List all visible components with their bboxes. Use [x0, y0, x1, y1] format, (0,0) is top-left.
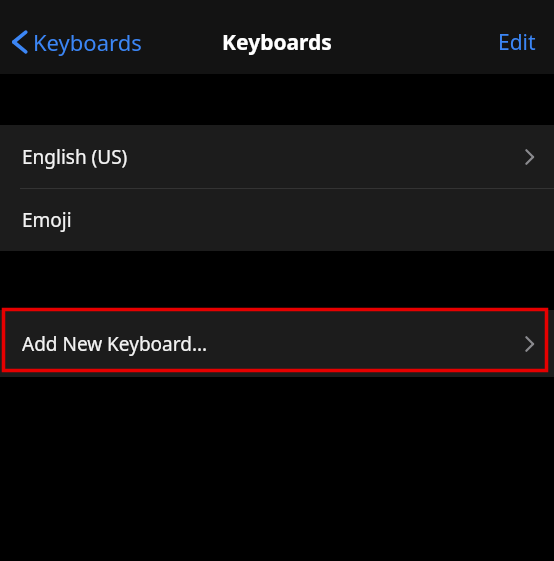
staticText: Keyboards: [222, 28, 332, 57]
staticText: Add New Keyboard...: [22, 331, 208, 357]
button[interactable]: Keyboards: [0, 23, 150, 61]
staticText: Edit: [498, 28, 536, 57]
staticText: English (US): [22, 144, 128, 170]
staticText: Keyboards: [33, 27, 142, 57]
staticText: Emoji: [22, 207, 72, 233]
button[interactable]: Edit: [480, 22, 554, 63]
button[interactable]: Emoji: [0, 189, 554, 251]
button[interactable]: Add New Keyboard...: [0, 310, 554, 377]
button[interactable]: English (US): [0, 125, 554, 189]
